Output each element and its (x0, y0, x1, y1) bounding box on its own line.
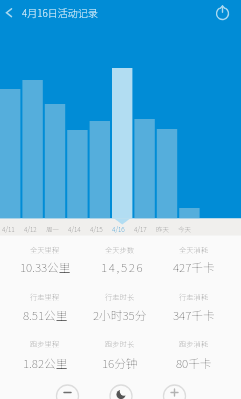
staticText: 全天消耗 (179, 245, 209, 256)
staticText: 4月16日活动记录 (22, 5, 98, 19)
staticText: 4/17 (134, 224, 147, 233)
button[interactable] (45, 27, 67, 236)
staticText: 2小时35分 (93, 306, 147, 323)
button[interactable] (53, 382, 82, 399)
button[interactable] (0, 27, 22, 236)
button[interactable] (157, 27, 179, 236)
staticText: 行走时长 (105, 292, 135, 303)
button[interactable] (67, 27, 89, 236)
staticText: 347千卡 (173, 306, 215, 323)
staticText: 全天步数 (105, 245, 135, 256)
button[interactable] (90, 27, 112, 236)
button[interactable] (0, 0, 20, 27)
staticText: 行走消耗 (179, 292, 209, 303)
button[interactable] (22, 27, 44, 236)
button[interactable] (179, 27, 201, 236)
staticText: 4/11 (2, 224, 15, 233)
staticText: 跑步时长 (105, 339, 135, 350)
staticText: 4/14 (68, 224, 81, 233)
staticText: 427千卡 (173, 258, 215, 275)
staticText: 全天里程 (30, 245, 60, 256)
staticText: 昨天 (156, 224, 169, 233)
staticText: 8.51公里 (23, 306, 68, 323)
staticText: 10.33公里 (20, 258, 71, 275)
button[interactable] (160, 382, 189, 399)
staticText: 4/12 (24, 224, 37, 233)
staticText: 行走里程 (30, 292, 60, 303)
button[interactable] (134, 27, 156, 236)
staticText: 80千卡 (176, 354, 212, 371)
staticText: 周一 (46, 224, 59, 233)
button[interactable] (206, 0, 241, 27)
staticText: 4/15 (90, 224, 103, 233)
staticText: 1.82公里 (23, 354, 68, 371)
staticText: 4/16 (112, 224, 125, 233)
staticText: 今天 (178, 224, 191, 233)
staticText: 14,526 (101, 258, 145, 275)
button[interactable] (112, 27, 134, 236)
staticText: 跑步消耗 (179, 339, 209, 350)
staticText: 16分钟 (102, 354, 138, 371)
button[interactable] (106, 382, 135, 399)
staticText: 跑步里程 (30, 339, 60, 350)
